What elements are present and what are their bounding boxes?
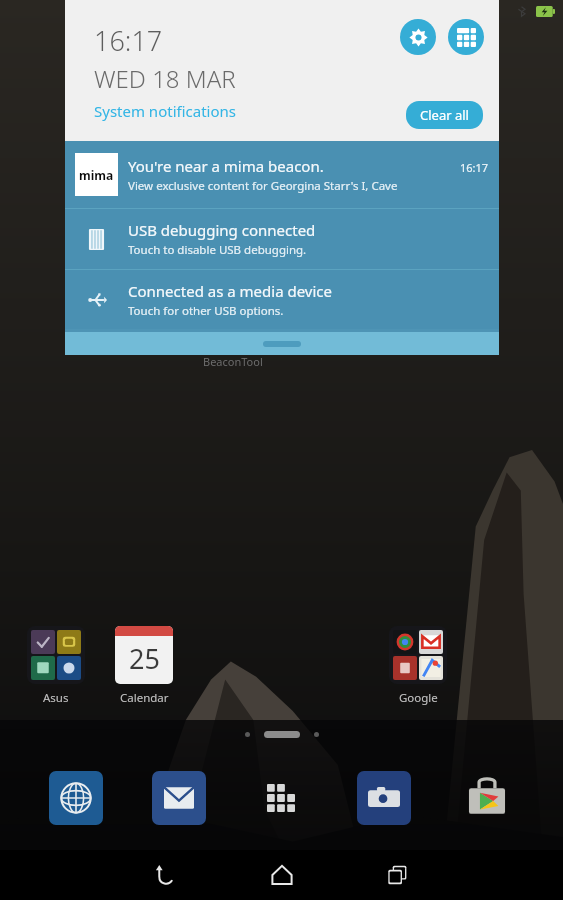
button[interactable]: 25 [115,626,173,684]
button[interactable]: Browser [49,771,103,825]
staticText: System notifications [94,101,236,121]
staticText: USB debugging connected [128,220,316,240]
button[interactable] [27,626,85,684]
button[interactable]: Camera [357,771,411,825]
staticText: Clear all [420,106,469,124]
button[interactable]: Play Store [460,771,514,825]
button[interactable]: Quick settings [448,19,484,55]
button[interactable] [389,626,447,684]
staticText: 25 [129,640,160,677]
button[interactable]: Close notification shade [65,332,499,355]
staticText: View exclusive content for Georgina Star… [128,178,452,194]
staticText: mima [79,167,114,183]
button[interactable]: System notifications [94,101,236,121]
staticText: BeaconTool [203,354,263,369]
button[interactable]: Clear all [406,101,483,129]
staticText: Touch for other USB options. [128,303,284,319]
button[interactable]: mima [65,141,499,208]
staticText: 16:17 [460,160,489,175]
button[interactable]: Recent apps [368,850,428,900]
staticText: Google [399,690,438,706]
button[interactable]: Settings [400,19,436,55]
button[interactable]: USB debugging connected [65,209,499,269]
staticText: Touch to disable USB debugging. [128,242,307,258]
button[interactable]: Connected as a media device [65,270,499,329]
staticText: You're near a mima beacon. [128,156,324,176]
button[interactable]: Email [152,771,206,825]
staticText: Asus [43,690,69,706]
staticText: WED 18 MAR [94,62,236,95]
staticText: Calendar [120,690,169,706]
button[interactable]: All apps [254,771,308,825]
button[interactable]: Home [252,850,312,900]
staticText: Connected as a media device [128,281,333,301]
staticText: 16:17 [94,22,163,59]
button[interactable]: Back [136,850,196,900]
